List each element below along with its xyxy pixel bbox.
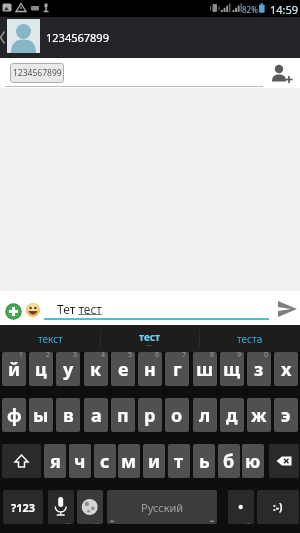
button[interactable]: т [168, 444, 190, 478]
staticText: 1 [19, 352, 24, 360]
staticText: и [148, 449, 161, 474]
button[interactable]: ц [29, 352, 53, 386]
button[interactable]: Русский [107, 490, 217, 524]
staticText: ж [251, 403, 267, 428]
staticText: 14:59 [270, 2, 299, 17]
staticText: 0 [264, 352, 269, 360]
staticText: у [63, 357, 74, 382]
button[interactable]: в [56, 398, 80, 432]
button[interactable]: м [118, 444, 140, 478]
button[interactable]: п [111, 398, 135, 432]
button[interactable]: г [165, 352, 189, 386]
staticText: :-) [273, 500, 283, 514]
staticText: Русский [141, 500, 184, 515]
staticText: 7 [182, 352, 187, 360]
staticText: п [117, 403, 129, 428]
button[interactable] [7, 19, 40, 53]
button[interactable]: о [165, 398, 189, 432]
staticText: тест [139, 330, 161, 344]
staticText: 8 [210, 352, 215, 360]
button[interactable]: к [84, 352, 108, 386]
button[interactable]: ь [193, 444, 215, 478]
button[interactable] [2, 444, 41, 478]
staticText: ... [95, 518, 100, 524]
staticText: 6 [155, 352, 160, 360]
button[interactable]: ч [69, 444, 91, 478]
staticText: 5 [128, 352, 133, 360]
staticText: к [90, 357, 102, 382]
button[interactable]: 1234567899 [10, 63, 64, 83]
button[interactable]: текст [0, 325, 100, 352]
button[interactable] [269, 444, 299, 478]
button[interactable]: ... [77, 490, 103, 524]
button[interactable] [26, 303, 40, 317]
staticText: щ [223, 357, 241, 382]
button[interactable] [266, 58, 298, 86]
staticText: я [50, 449, 61, 474]
button[interactable]: :-) [257, 490, 299, 524]
staticText: ф [7, 403, 22, 428]
button[interactable] [5, 303, 22, 320]
staticText: е [118, 357, 129, 382]
staticText: ц [35, 357, 47, 382]
button[interactable]: р [138, 398, 162, 432]
button[interactable]: й [2, 352, 26, 386]
staticText: 2 [46, 352, 51, 360]
button[interactable]: д [220, 398, 244, 432]
staticText: ы [33, 403, 49, 428]
button[interactable]: л [193, 398, 217, 432]
button[interactable]: ... [48, 490, 74, 524]
button[interactable]: ш [193, 352, 217, 386]
staticText: ··· [146, 341, 152, 351]
staticText: 4 [101, 352, 106, 360]
staticText: 3 [73, 352, 78, 360]
staticText: о [171, 403, 183, 428]
staticText: 82% [242, 4, 258, 15]
staticText: 9 [237, 352, 242, 360]
staticText: ш [196, 357, 214, 382]
staticText: н [144, 357, 156, 382]
staticText: й [8, 357, 21, 382]
button[interactable]: и [143, 444, 165, 478]
button[interactable]: ы [29, 398, 53, 432]
staticText: теста [237, 332, 263, 346]
staticText: в [63, 403, 74, 428]
staticText: ч [74, 449, 86, 474]
button[interactable]: н [138, 352, 162, 386]
button[interactable]: у [56, 352, 80, 386]
staticText: текст [38, 332, 63, 346]
staticText: э [281, 403, 291, 428]
staticText: з [254, 357, 264, 382]
button[interactable]: тест [100, 325, 200, 352]
staticText: л [199, 403, 211, 428]
staticText: ?123 [11, 500, 36, 515]
button[interactable]: э [274, 398, 298, 432]
staticText: а [91, 403, 102, 428]
button[interactable]: ю [242, 444, 264, 478]
staticText: б [223, 449, 235, 474]
button[interactable]: с [94, 444, 116, 478]
staticText: ю [245, 449, 261, 474]
button[interactable]: ... [228, 490, 254, 524]
button[interactable]: ?123 [3, 490, 43, 524]
button[interactable]: х [274, 352, 298, 386]
button[interactable]: е [111, 352, 135, 386]
button[interactable]: а [84, 398, 108, 432]
button[interactable]: ж [247, 398, 271, 432]
staticText: ... [66, 518, 71, 524]
button[interactable]: б [218, 444, 240, 478]
button[interactable]: щ [220, 352, 244, 386]
button[interactable]: теста [200, 325, 300, 352]
button[interactable]: я [44, 444, 66, 478]
staticText: Тет тест [57, 301, 102, 317]
button[interactable] [274, 297, 300, 321]
staticText: 1234567899 [46, 30, 109, 45]
staticText: х [281, 357, 292, 382]
button[interactable]: ф [2, 398, 26, 432]
staticText: ь [199, 449, 210, 474]
staticText: г [173, 357, 182, 382]
staticText: т [174, 449, 184, 474]
staticText: м [121, 449, 137, 474]
button[interactable]: з [247, 352, 271, 386]
staticText: р [144, 403, 156, 428]
